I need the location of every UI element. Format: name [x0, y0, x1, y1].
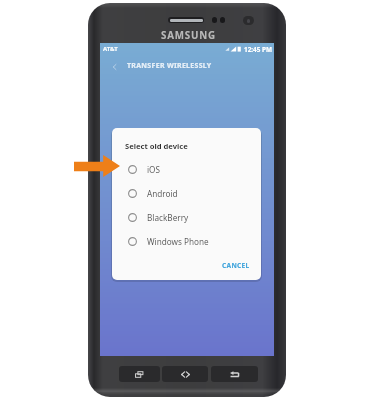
staticText: 12:45 PM: [244, 45, 273, 54]
staticText: CANCEL: [222, 261, 250, 270]
staticText: SAMSUNG: [161, 29, 216, 42]
button[interactable]: iOS: [112, 157, 261, 181]
button[interactable]: Home: [162, 366, 208, 382]
button[interactable]: Windows Phone: [112, 229, 261, 253]
button[interactable]: BlackBerry: [112, 205, 261, 229]
staticText: BlackBerry: [147, 212, 189, 223]
staticText: iOS: [147, 164, 161, 175]
button[interactable]: CANCEL: [215, 256, 256, 274]
staticText: TRANSFER WIRELESSLY: [127, 61, 212, 71]
staticText: Select old device: [125, 141, 188, 151]
staticText: Windows Phone: [147, 236, 209, 247]
button[interactable]: Recent apps: [119, 366, 160, 382]
button[interactable]: Back: [109, 61, 120, 72]
staticText: Android: [147, 188, 178, 199]
staticText: AT&T: [103, 45, 118, 53]
button[interactable]: Android: [112, 181, 261, 205]
button[interactable]: Back: [211, 366, 258, 382]
